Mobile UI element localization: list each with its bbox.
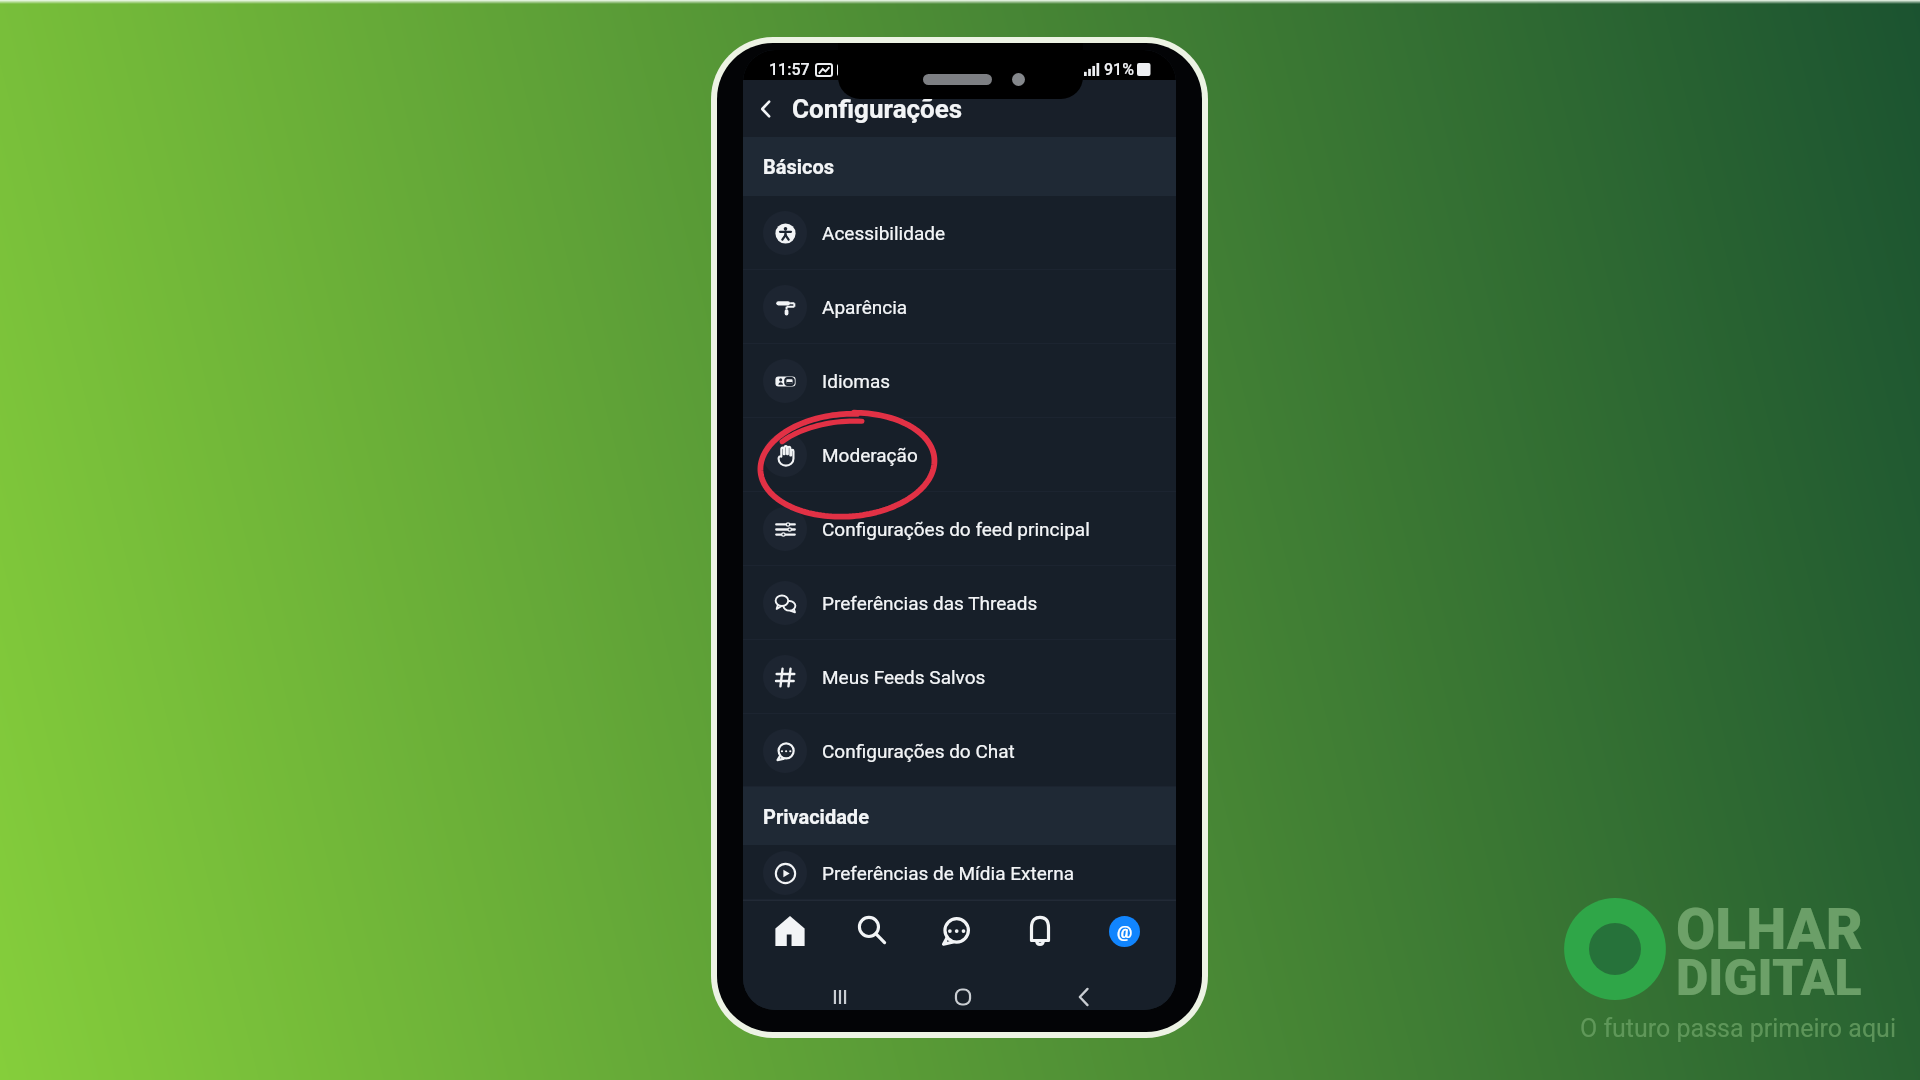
staticText: Configurações do Chat [822, 740, 1015, 762]
button[interactable]: Voltar do sistema [1062, 975, 1106, 1010]
button[interactable]: Meus Feeds Salvos [743, 640, 1176, 714]
staticText: Moderação [822, 444, 918, 466]
staticText: DIGITAL [1676, 949, 1862, 1008]
button[interactable]: Idiomas [743, 344, 1176, 418]
staticText: Preferências das Threads [822, 592, 1038, 614]
button[interactable]: Aparência [743, 270, 1176, 344]
staticText: O futuro passa primeiro aqui [1580, 1014, 1896, 1043]
staticText: Preferências de Mídia Externa [822, 862, 1074, 884]
button[interactable]: Mensagens [930, 909, 982, 953]
button[interactable]: Preferências das Threads [743, 566, 1176, 640]
staticText: 91% [1104, 60, 1134, 79]
button[interactable]: Perfil [1098, 909, 1150, 953]
staticText: OLHAR [1676, 896, 1863, 963]
button[interactable]: Notificações [1014, 909, 1066, 953]
staticText: Básicos [763, 155, 835, 178]
button[interactable]: Acessibilidade [743, 196, 1176, 270]
staticText: 11:57 [769, 60, 810, 79]
staticText: Meus Feeds Salvos [822, 666, 986, 688]
staticText: Configurações [792, 94, 963, 124]
button[interactable]: Moderação [743, 418, 1176, 492]
button[interactable]: Configurações do feed principal [743, 492, 1176, 566]
button[interactable]: Início do sistema [941, 975, 985, 1010]
button[interactable]: Configurações do Chat [743, 714, 1176, 787]
staticText: Privacidade [763, 805, 869, 828]
staticText: Aparência [822, 296, 908, 318]
staticText: @ [1117, 922, 1133, 942]
button[interactable]: Início [764, 909, 816, 953]
button[interactable]: Recentes [818, 975, 862, 1010]
staticText: Idiomas [822, 370, 891, 392]
button[interactable]: Buscar [846, 909, 898, 953]
button[interactable]: Preferências de Mídia Externa [743, 845, 1176, 900]
button[interactable]: Voltar [746, 89, 786, 129]
staticText: Configurações do feed principal [822, 518, 1090, 540]
staticText: Acessibilidade [822, 222, 946, 244]
